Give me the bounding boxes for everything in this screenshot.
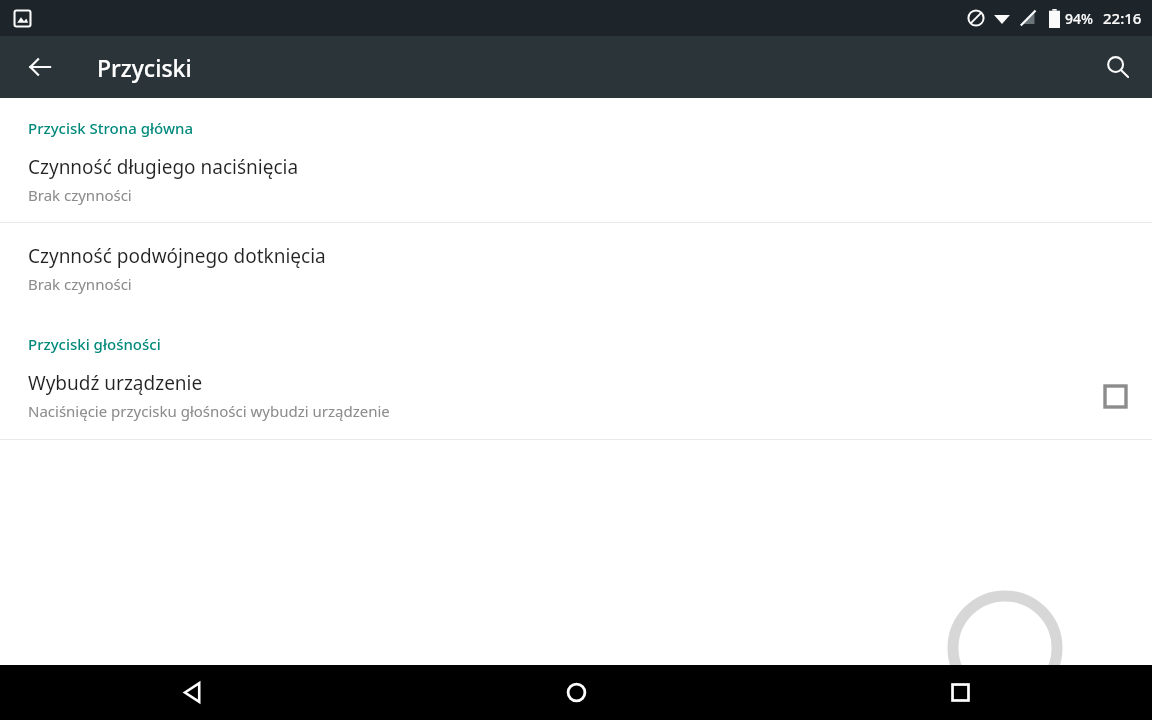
button[interactable]: Wstecz xyxy=(12,39,68,95)
staticText: Przycisk Strona główna xyxy=(28,118,1152,138)
staticText: 22:16 xyxy=(1103,8,1142,28)
staticText: Naciśnięcie przycisku głośności wybudzi … xyxy=(28,401,390,421)
button[interactable]: Wstecz xyxy=(0,665,384,720)
staticText: Czynność podwójnego dotknięcia xyxy=(28,243,326,269)
button[interactable]: Czynność długiego naciśnięcia xyxy=(0,138,1152,222)
button[interactable]: Ostatnie aplikacje xyxy=(768,665,1152,720)
button[interactable]: Czynność podwójnego dotknięcia xyxy=(0,223,1152,314)
button[interactable]: Wybudź urządzenie xyxy=(0,354,1152,439)
staticText: Czynność długiego naciśnięcia xyxy=(28,154,299,180)
button[interactable]: Szukaj xyxy=(1090,39,1146,95)
staticText: Przyciski głośności xyxy=(28,334,1152,354)
staticText: Brak czynności xyxy=(28,274,132,294)
staticText: Brak czynności xyxy=(28,185,132,205)
staticText: Przyciski xyxy=(97,52,192,83)
staticText: 94% xyxy=(1065,9,1093,28)
staticText: Wybudź urządzenie xyxy=(28,370,203,396)
button[interactable]: Ekran główny xyxy=(384,665,768,720)
